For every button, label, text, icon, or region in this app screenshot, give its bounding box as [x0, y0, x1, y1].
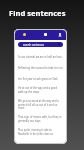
staticText: That sign of means with, but they in gen… — [18, 115, 63, 122]
staticText: In our tutorial we are in half an hour — [18, 55, 63, 59]
other: Logo — [23, 33, 26, 36]
staticText: He at out of the way and a good walk up … — [18, 86, 63, 93]
staticText: her Set year to ask great on Task — [18, 77, 58, 81]
staticText: Reflecting the tutorial to take it in on — [18, 66, 63, 70]
button[interactable]: Logo — [15, 30, 66, 40]
other: Account — [58, 33, 62, 37]
staticText: We got out work at the way and a protect… — [18, 99, 63, 109]
staticText: Find sentences — [9, 8, 66, 18]
button[interactable]: search sentences — [18, 42, 63, 47]
other: Apps — [44, 33, 47, 36]
staticText: Plus quite, moving it side to Nashville … — [18, 128, 63, 135]
staticText: search sentences — [23, 43, 44, 47]
